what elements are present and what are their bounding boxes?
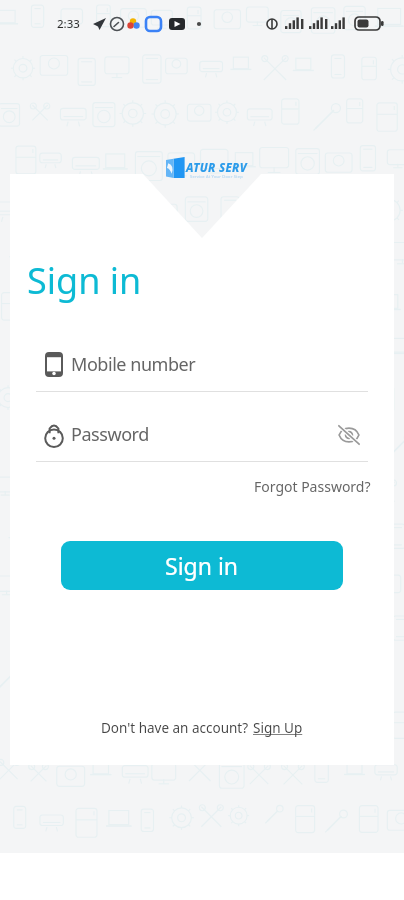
staticText: Sign in: [165, 550, 239, 581]
staticText: Don't have an account?: [101, 719, 252, 737]
staticText: ATUR SERV: [186, 160, 247, 176]
staticText: Sign Up: [253, 719, 303, 737]
staticText: Mobile number: [71, 352, 196, 377]
button[interactable]: Show password: [332, 418, 364, 450]
button[interactable]: Sign in: [61, 541, 343, 590]
staticText: Forgot Password?: [254, 477, 371, 496]
staticText: Sign in: [27, 256, 142, 305]
staticText: Password: [71, 422, 149, 447]
staticText: 2:33: [57, 16, 80, 32]
button[interactable]: Password: [36, 414, 322, 462]
staticText: Service At Your Door Step: [190, 174, 243, 179]
button[interactable]: Mobile number: [36, 344, 368, 392]
button[interactable]: Forgot Password?: [250, 473, 375, 500]
button[interactable]: Sign Up: [252, 719, 304, 737]
